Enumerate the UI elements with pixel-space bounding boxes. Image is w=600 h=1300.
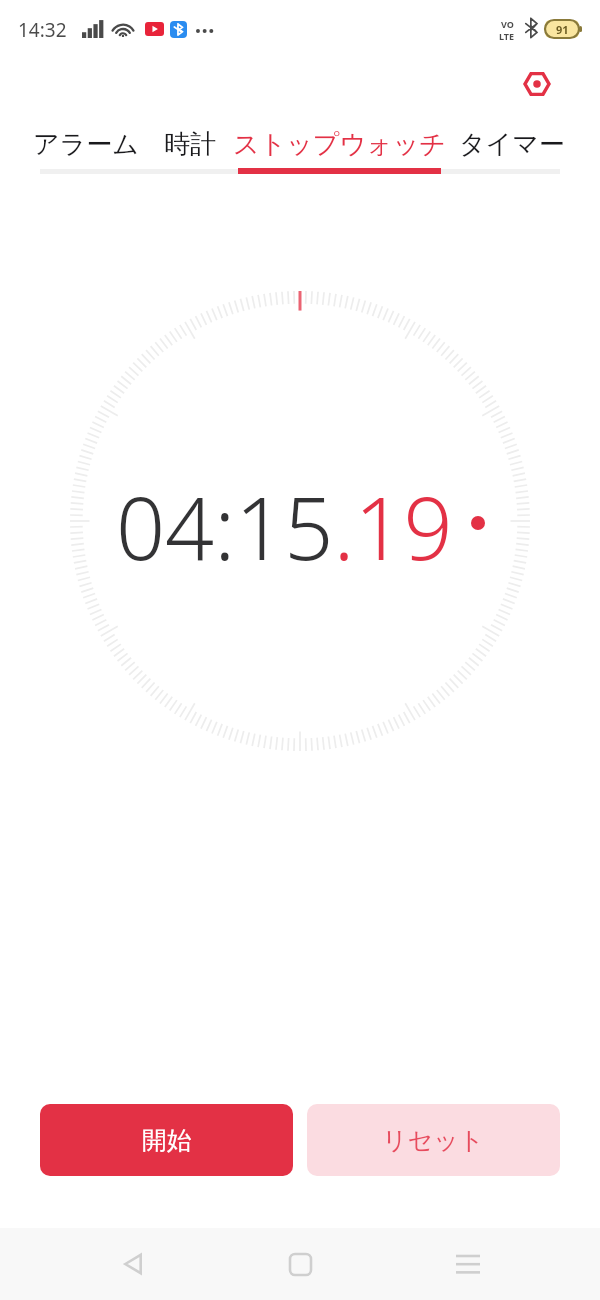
button[interactable]: ストップウォッチ [231,118,447,170]
button[interactable]: Recent apps [433,1229,503,1299]
button[interactable]: Home [265,1229,335,1299]
button[interactable]: Back [98,1229,168,1299]
button[interactable]: タイマー [458,118,566,170]
staticText: タイマー [459,128,565,161]
button[interactable]: アラーム [32,118,140,170]
staticText: 時計 [164,128,216,161]
button[interactable]: リセット [307,1104,560,1176]
button[interactable]: 時計 [163,118,217,170]
staticText: 14:32 [18,17,67,43]
staticText: 91 [556,22,569,37]
staticText: ストップウォッチ [233,128,446,161]
staticText: LTE [499,30,515,42]
staticText: 開始 [142,1125,192,1156]
staticText: リセット [382,1125,485,1156]
staticText: VO [501,18,514,30]
staticText: 04:15.19 [116,468,453,578]
button[interactable]: 開始 [40,1104,293,1176]
staticText: アラーム [33,128,139,161]
button[interactable]: Settings [513,60,561,108]
